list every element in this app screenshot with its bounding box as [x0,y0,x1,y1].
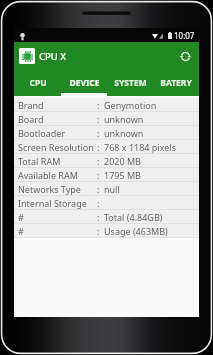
staticText: Total RAM [18,155,61,167]
staticText: : [97,197,100,209]
staticText: : [97,183,100,195]
staticText: CPU X [39,50,67,63]
staticText: # [18,225,24,237]
button[interactable]: SYSTEM [107,70,153,96]
button[interactable]: Networks Type [14,182,199,195]
button[interactable]: Refresh [174,45,196,67]
staticText: : [97,155,100,167]
staticText: DEVICE [69,77,100,89]
button[interactable]: Available RAM [14,168,199,181]
staticText: : [97,225,100,237]
staticText: : [97,169,100,181]
staticText: unknown [104,113,144,125]
staticText: # [18,211,24,223]
button[interactable]: Screen Resolution [14,140,199,153]
staticText: Usage (463MB) [104,225,168,237]
button[interactable]: BATERY [153,70,199,96]
button[interactable]: # [14,210,199,223]
button[interactable]: Brand [14,98,199,111]
staticText: Brand [18,99,44,111]
staticText: null [104,183,120,195]
button[interactable]: Bootloader [14,126,199,139]
staticText: Screen Resolution [18,141,94,153]
staticText: Networks Type [18,183,81,195]
staticText: unknown [104,127,144,139]
staticText: Total (4.84GB) [104,211,163,223]
staticText: : [97,127,100,139]
staticText: BATERY [160,77,192,89]
staticText: Internal Storage [18,197,87,209]
button[interactable]: DEVICE [61,70,107,96]
staticText: Bootloader [18,127,66,139]
staticText: 768 x 1184 pixels [104,141,176,153]
staticText: 2020 MB [104,155,141,167]
staticText: : [97,141,100,153]
staticText: Board [18,113,44,125]
staticText: Available RAM [18,169,78,181]
button[interactable]: # [14,224,199,237]
staticText: CPU [29,77,47,89]
button[interactable]: Total RAM [14,154,199,167]
staticText: Genymotion [104,99,157,111]
staticText: : [97,113,100,125]
button[interactable]: Internal Storage [14,196,199,209]
staticText: : [97,99,100,111]
button[interactable]: CPU [14,70,61,96]
staticText: 10:07 [174,30,195,41]
button[interactable]: Board [14,112,199,125]
staticText: 1795 MB [104,169,141,181]
staticText: : [97,211,100,223]
staticText: SYSTEM [114,77,147,89]
